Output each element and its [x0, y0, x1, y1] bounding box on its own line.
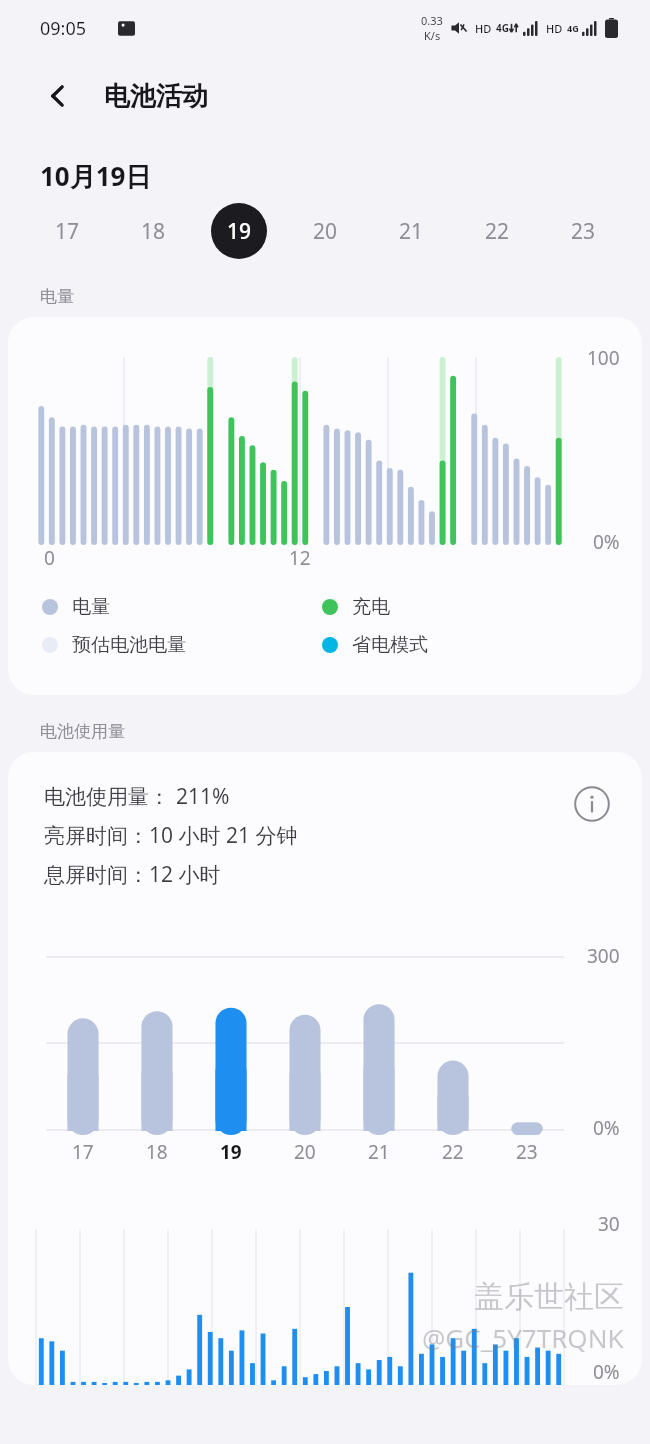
staticText: 23: [516, 1139, 538, 1165]
button[interactable]: 20: [282, 194, 368, 268]
staticText: 19: [227, 217, 252, 246]
staticText: 22: [442, 1139, 464, 1165]
staticText: 预估电池电量: [72, 633, 186, 657]
staticText: 18: [146, 1139, 168, 1165]
staticText: 09:05: [40, 16, 87, 41]
staticText: HD: [546, 21, 563, 36]
staticText: 盖乐世社区: [474, 1278, 624, 1316]
button[interactable]: 22: [454, 194, 540, 268]
button[interactable]: 18: [110, 194, 196, 268]
staticText: 211%: [176, 782, 230, 811]
staticText: 10月19日: [40, 158, 152, 194]
button[interactable]: 详细信息: [570, 782, 614, 826]
staticText: 0%: [593, 529, 620, 555]
staticText: 充电: [352, 595, 390, 619]
staticText: 电量: [72, 595, 110, 619]
staticText: 亮屏时间：10 小时 21 分钟: [44, 821, 298, 850]
staticText: 100: [587, 345, 620, 371]
staticText: 300: [587, 943, 620, 969]
button[interactable]: 17: [24, 194, 110, 268]
staticText: @GC_5Y7TRQNK: [422, 1320, 624, 1355]
staticText: 23: [571, 217, 596, 246]
staticText: K/s: [424, 28, 441, 43]
staticText: 12: [289, 545, 311, 571]
button[interactable]: 返回: [34, 72, 82, 120]
staticText: 20: [294, 1139, 316, 1165]
staticText: 0%: [593, 1115, 620, 1141]
staticText: 电池使用量: [40, 721, 125, 742]
staticText: 4G: [496, 21, 509, 35]
staticText: 17: [72, 1139, 94, 1165]
staticText: 20: [313, 217, 338, 246]
button[interactable]: 23: [540, 194, 626, 268]
staticText: 19: [220, 1139, 242, 1165]
staticText: 省电模式: [352, 633, 428, 657]
staticText: 电池使用量：: [44, 784, 170, 810]
staticText: 30: [598, 1211, 620, 1237]
staticText: 息屏时间：12 小时: [44, 860, 221, 889]
staticText: 22: [485, 217, 510, 246]
staticText: 电量: [40, 286, 74, 307]
button[interactable]: 19: [196, 194, 282, 268]
staticText: 18: [141, 217, 166, 246]
staticText: 0%: [593, 1359, 620, 1385]
staticText: 21: [368, 1139, 390, 1165]
staticText: 21: [399, 217, 424, 246]
staticText: 0: [44, 545, 55, 571]
staticText: 0.33: [421, 13, 443, 28]
staticText: 17: [55, 217, 80, 246]
button[interactable]: 21: [368, 194, 454, 268]
staticText: 电池活动: [104, 80, 208, 113]
staticText: 4G: [567, 22, 579, 34]
staticText: HD: [475, 21, 492, 36]
